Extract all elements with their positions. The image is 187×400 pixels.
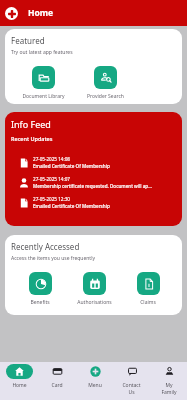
staticText: Benefits — [30, 299, 50, 306]
button[interactable]: Home — [0, 362, 38, 389]
staticText: My Family — [161, 382, 177, 396]
button[interactable]: 27-05-2025 14:07 — [11, 176, 176, 189]
staticText: Home — [28, 7, 54, 19]
button[interactable]: My Family — [150, 362, 187, 396]
button[interactable]: Claims — [121, 272, 175, 306]
staticText: Home — [12, 382, 27, 389]
button[interactable]: Contact Us — [113, 362, 150, 396]
staticText: Claims — [140, 299, 156, 306]
button[interactable]: 27-05-2025 14:08 — [11, 156, 176, 169]
staticText: Recently Accessed — [11, 241, 80, 252]
staticText: Emailed Certificate Of Membership — [33, 203, 110, 209]
staticText: Emailed Certificate Of Membership — [33, 163, 110, 169]
staticText: Try out latest app features — [11, 49, 73, 56]
staticText: Membership certificate requested. Docume… — [33, 183, 152, 189]
staticText: Info Feed — [11, 118, 51, 130]
staticText: 27-05-2025 14:08 — [33, 156, 70, 162]
staticText: Card — [51, 382, 63, 389]
button[interactable]: Logo — [5, 7, 18, 20]
staticText: Recent Updates — [11, 135, 53, 142]
staticText: Access the items you use frequently — [11, 255, 96, 262]
button[interactable]: Benefits — [13, 272, 67, 306]
staticText: Menu — [88, 382, 102, 389]
staticText: Featured — [11, 35, 45, 46]
button[interactable]: 27-05-2025 12:30 — [11, 196, 176, 209]
staticText: Contact Us — [122, 382, 141, 396]
staticText: 27-05-2025 12:30 — [33, 196, 70, 202]
staticText: Provider Search — [87, 93, 124, 100]
staticText: Authorisations — [77, 299, 112, 306]
button[interactable]: Authorisations — [67, 272, 121, 306]
staticText: 27-05-2025 14:07 — [33, 176, 70, 182]
button[interactable]: Card — [38, 362, 76, 389]
button[interactable]: Provider Search — [74, 66, 136, 100]
button[interactable]: Document Library — [12, 66, 74, 100]
staticText: Document Library — [22, 93, 65, 100]
button[interactable]: Menu — [76, 362, 113, 389]
